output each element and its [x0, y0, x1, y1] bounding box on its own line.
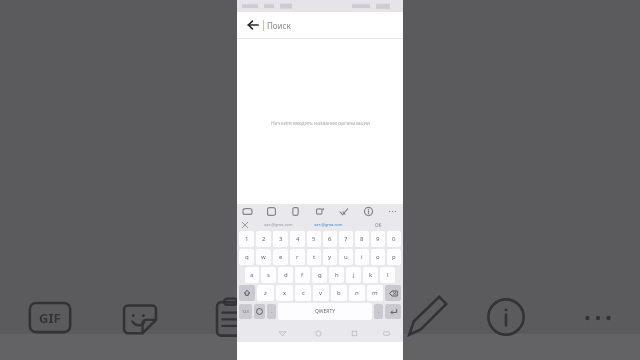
button[interactable]: Stickers	[119, 298, 161, 340]
button[interactable]: x	[276, 285, 293, 301]
button[interactable]: emoji	[254, 304, 265, 319]
staticText: u	[344, 253, 348, 261]
button[interactable]: a	[245, 267, 259, 283]
staticText: 5	[312, 235, 316, 243]
staticText: 7	[344, 235, 348, 243]
staticText: d	[284, 271, 288, 279]
staticText: Начните вводить название организации	[271, 120, 370, 127]
staticText: h	[335, 271, 339, 279]
button[interactable]: g	[312, 267, 327, 283]
button[interactable]: More options	[576, 296, 620, 340]
button[interactable]: 9	[371, 231, 385, 247]
button[interactable]: Clipboard	[210, 296, 254, 340]
button[interactable]: OK	[353, 219, 403, 230]
button[interactable]: shift	[239, 285, 255, 301]
staticText: GIF	[39, 309, 61, 327]
staticText: q	[245, 253, 249, 261]
staticText: f	[301, 271, 304, 279]
button[interactable]: 7	[339, 231, 353, 247]
staticText: 2	[262, 235, 266, 243]
button[interactable]: c	[295, 285, 311, 301]
button[interactable]: Toolbar item 3	[314, 205, 327, 218]
staticText: QWERTY	[315, 308, 336, 315]
button[interactable]: k	[363, 267, 378, 283]
button[interactable]: period	[374, 304, 383, 319]
button[interactable]: v	[313, 285, 329, 301]
staticText: y	[328, 253, 332, 261]
staticText: 0	[392, 235, 396, 243]
button[interactable]: comma	[267, 304, 276, 319]
staticText: b	[337, 289, 341, 297]
button[interactable]: q	[239, 249, 254, 265]
button[interactable]: 2	[256, 231, 271, 247]
button[interactable]: m	[367, 285, 383, 301]
button[interactable]: o	[371, 249, 385, 265]
staticText: p	[392, 253, 396, 261]
button[interactable]: r	[290, 249, 305, 265]
button[interactable]: Toolbar item 6	[386, 205, 399, 218]
button[interactable]: s	[261, 267, 276, 283]
button[interactable]: Toolbar item 0	[241, 205, 254, 218]
staticText: 1	[245, 235, 249, 243]
staticText: e	[279, 253, 283, 261]
button[interactable]: чат.@gma.com	[303, 219, 353, 230]
staticText: s	[267, 271, 270, 279]
button[interactable]: w	[256, 249, 271, 265]
button[interactable]: f	[295, 267, 310, 283]
staticText: x	[283, 289, 287, 297]
button[interactable]: 5	[307, 231, 321, 247]
button[interactable]: Hide keyboard	[379, 326, 393, 340]
staticText: c	[302, 289, 305, 297]
staticText: w	[261, 253, 266, 261]
button[interactable]: enter	[385, 304, 401, 319]
button[interactable]: 3	[273, 231, 288, 247]
button[interactable]: Back	[275, 326, 289, 340]
staticText: t	[313, 253, 316, 261]
button[interactable]: Home	[311, 326, 325, 340]
button[interactable]: Draw	[404, 296, 448, 340]
staticText: OK	[375, 222, 382, 228]
button[interactable]: h	[329, 267, 344, 283]
staticText: 8	[360, 235, 364, 243]
button[interactable]: 0	[387, 231, 401, 247]
button[interactable]: 4	[290, 231, 305, 247]
button[interactable]: чат.@gma.com	[253, 219, 303, 230]
staticText: .	[378, 308, 380, 315]
staticText: r	[296, 253, 299, 261]
button[interactable]: 6	[323, 231, 337, 247]
button[interactable]: Recents	[347, 326, 361, 340]
staticText: g	[318, 271, 322, 279]
button[interactable]: Toolbar item 5	[362, 205, 375, 218]
button[interactable]: Back	[243, 15, 263, 35]
button[interactable]: 8	[355, 231, 369, 247]
button[interactable]: 1	[239, 231, 254, 247]
button[interactable]: l	[380, 267, 395, 283]
button[interactable]: z	[257, 285, 274, 301]
staticText: 9	[376, 235, 380, 243]
button[interactable]: Info	[485, 296, 527, 338]
button[interactable]: Toolbar item 2	[289, 205, 302, 218]
button[interactable]: QWERTY	[278, 303, 372, 320]
button[interactable]: t	[307, 249, 321, 265]
button[interactable]: i	[355, 249, 369, 265]
staticText: l	[387, 271, 389, 279]
button[interactable]: 123	[239, 304, 252, 319]
button[interactable]: Toolbar item 4	[338, 205, 351, 218]
button[interactable]: e	[273, 249, 288, 265]
staticText: 123	[242, 309, 249, 314]
button[interactable]: backspace	[385, 285, 401, 301]
button[interactable]: n	[349, 285, 365, 301]
button[interactable]: y	[323, 249, 337, 265]
staticText: чат.@gma.com	[264, 222, 293, 227]
button[interactable]: b	[331, 285, 347, 301]
button[interactable]: p	[387, 249, 401, 265]
staticText: a	[250, 271, 254, 279]
button[interactable]: u	[339, 249, 353, 265]
staticText: 4	[296, 235, 300, 243]
staticText: z	[264, 289, 267, 297]
button[interactable]: d	[278, 267, 293, 283]
button[interactable]: GIF	[26, 296, 74, 340]
button[interactable]: j	[346, 267, 361, 283]
button[interactable]: Voice	[237, 222, 253, 228]
button[interactable]: Toolbar item 1	[265, 205, 278, 218]
